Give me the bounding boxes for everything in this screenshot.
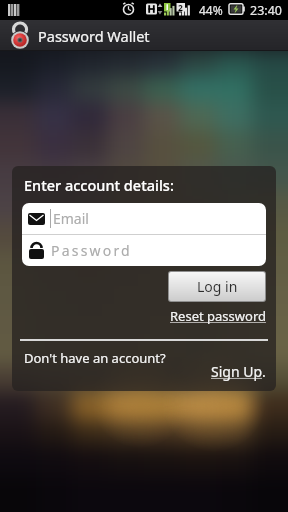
staticText: Email <box>53 209 89 228</box>
staticText: 23:40 <box>250 2 282 19</box>
button[interactable]: Log in <box>169 272 265 301</box>
staticText: Sign Up. <box>211 362 266 381</box>
staticText: Enter account details: <box>24 175 174 195</box>
button[interactable]: Reset password <box>12 307 266 325</box>
staticText: 2 <box>178 2 183 14</box>
button[interactable]: Password <box>22 235 266 266</box>
staticText: 44% <box>199 2 223 18</box>
staticText: Reset password <box>170 307 266 325</box>
button[interactable]: Email <box>22 203 266 234</box>
staticText: Log in <box>197 277 238 296</box>
staticText: Password <box>51 241 132 260</box>
button[interactable]: Sign Up. <box>12 362 266 381</box>
staticText: Don't have an account? <box>24 349 166 367</box>
staticText: Password Wallet <box>38 26 150 46</box>
